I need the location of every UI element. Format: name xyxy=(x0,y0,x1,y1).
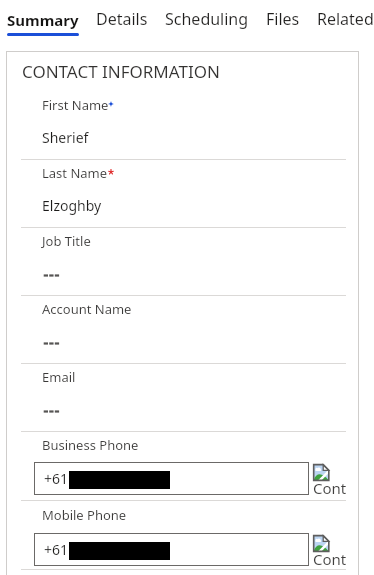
button[interactable]: Related xyxy=(317,8,374,36)
staticText: CONTACT INFORMATION xyxy=(22,60,220,83)
staticText: Cont xyxy=(313,478,347,498)
button[interactable]: Summary xyxy=(7,8,79,36)
button[interactable]: +61 xyxy=(34,533,309,566)
staticText: Related xyxy=(317,8,374,30)
button[interactable]: Contact picker xyxy=(313,533,347,570)
staticText: +61 xyxy=(44,540,69,559)
button[interactable]: First Name xyxy=(21,92,346,159)
button[interactable]: +61 xyxy=(34,462,309,495)
button[interactable]: Job Title xyxy=(21,228,346,295)
staticText: Cont xyxy=(313,549,347,569)
button[interactable]: Scheduling xyxy=(165,8,249,36)
staticText: Mobile Phone xyxy=(42,506,127,524)
staticText: Sherief xyxy=(42,128,89,147)
staticText: Summary xyxy=(7,10,79,30)
staticText: First Name xyxy=(42,96,109,114)
staticText: Files xyxy=(266,8,300,30)
staticText: Job Title xyxy=(42,232,91,250)
staticText: +61 xyxy=(44,469,69,488)
button[interactable]: Contact picker xyxy=(313,462,347,499)
button[interactable]: Details xyxy=(96,8,148,36)
staticText: Business Phone xyxy=(42,436,139,454)
staticText: Scheduling xyxy=(165,8,249,30)
button[interactable]: Email xyxy=(21,364,346,431)
staticText: Details xyxy=(96,8,148,30)
staticText: Email xyxy=(42,368,76,386)
button[interactable]: Files xyxy=(266,8,300,36)
staticText: Last Name xyxy=(42,164,108,182)
staticText: Elzoghby xyxy=(42,196,102,215)
button[interactable]: Last Name xyxy=(21,160,346,227)
button[interactable]: Account Name xyxy=(21,296,346,363)
staticText: Account Name xyxy=(42,300,132,318)
